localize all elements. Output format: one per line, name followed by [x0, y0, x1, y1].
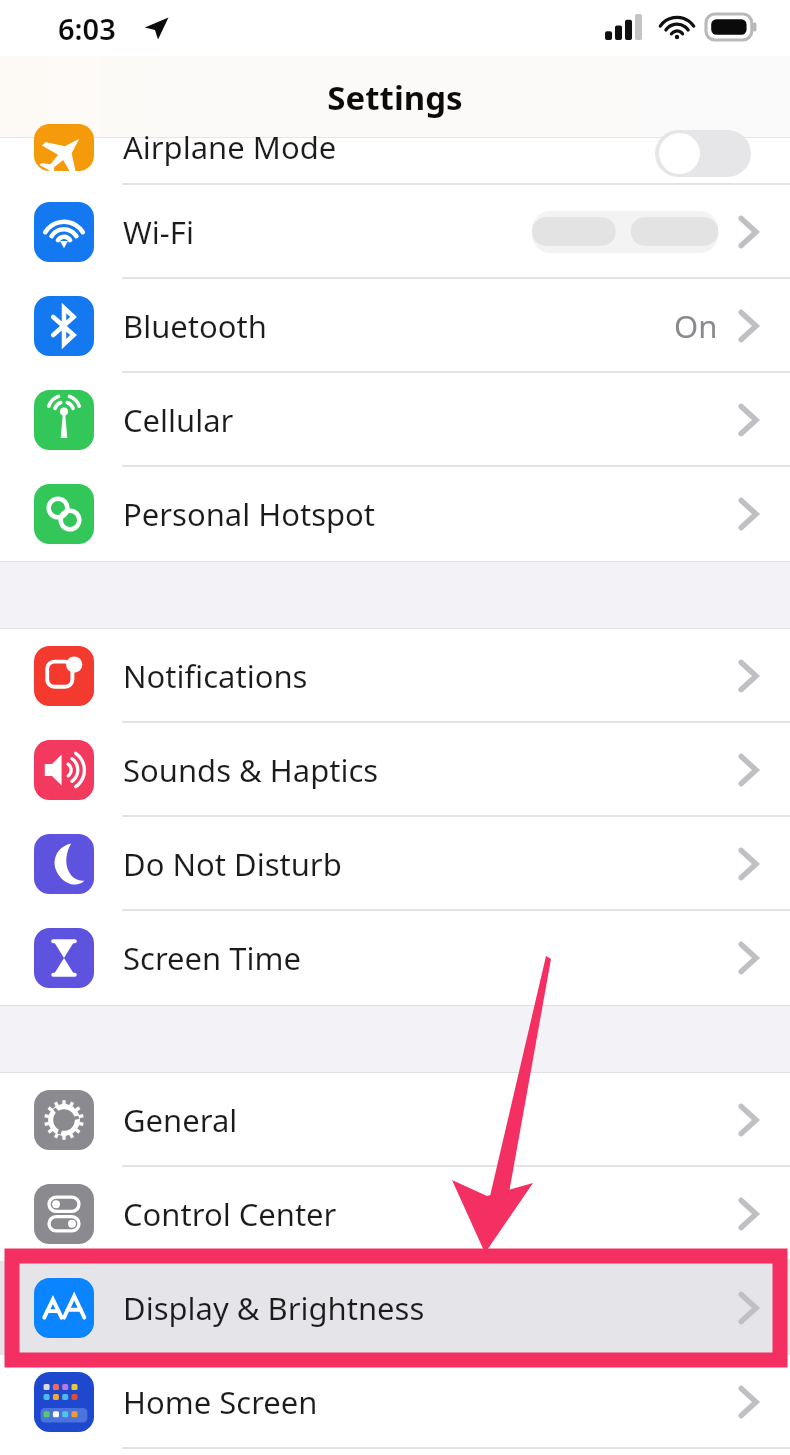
- staticText: General: [123, 1099, 238, 1141]
- staticText: Notifications: [123, 655, 308, 697]
- button[interactable]: Wi-Fi: [0, 185, 790, 279]
- staticText: Wi-Fi: [123, 211, 194, 253]
- button[interactable]: Display & Brightness: [0, 1261, 790, 1355]
- staticText: Control Center: [123, 1193, 337, 1235]
- staticText: Do Not Disturb: [123, 843, 342, 885]
- button[interactable]: Notifications: [0, 629, 790, 723]
- button[interactable]: Do Not Disturb: [0, 817, 790, 911]
- button[interactable]: Personal Hotspot: [0, 467, 790, 561]
- staticText: Bluetooth: [123, 305, 267, 347]
- button[interactable]: Control Center: [0, 1167, 790, 1261]
- staticText: Airplane Mode: [123, 126, 337, 168]
- button[interactable]: Home Screen: [0, 1355, 790, 1449]
- button[interactable]: Bluetooth: [0, 279, 790, 373]
- staticText: Personal Hotspot: [123, 493, 376, 535]
- staticText: Settings: [327, 75, 463, 120]
- staticText: Screen Time: [123, 937, 301, 979]
- staticText: 6:03: [58, 9, 116, 48]
- staticText: On: [674, 305, 718, 347]
- staticText: Cellular: [123, 399, 234, 441]
- staticText: Sounds & Haptics: [123, 749, 379, 791]
- button[interactable]: Cellular: [0, 373, 790, 467]
- button[interactable]: General: [0, 1073, 790, 1167]
- staticText: Display & Brightness: [123, 1287, 425, 1329]
- button[interactable]: Sounds & Haptics: [0, 723, 790, 817]
- button[interactable]: Screen Time: [0, 911, 790, 1005]
- staticText: Home Screen: [123, 1381, 318, 1423]
